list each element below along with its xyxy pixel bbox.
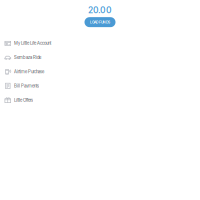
staticText: Sembaza Ride (14, 55, 41, 60)
staticText: LOAD FUNDS (90, 20, 110, 24)
staticText: Little Offers (14, 97, 33, 103)
button[interactable]: Bill Payments (0, 79, 200, 93)
staticText: Airtime Purchase (14, 69, 44, 74)
button[interactable]: Little Offers (0, 93, 200, 107)
button[interactable]: My Little Life Account (0, 36, 200, 50)
button[interactable]: Sembaza Ride (0, 50, 200, 65)
button[interactable]: LOAD FUNDS (84, 17, 115, 27)
staticText: My Little Life Account (14, 41, 51, 46)
staticText: 20.00 (88, 5, 112, 15)
staticText: Bill Payments (14, 83, 39, 88)
button[interactable]: Airtime Purchase (0, 65, 200, 79)
